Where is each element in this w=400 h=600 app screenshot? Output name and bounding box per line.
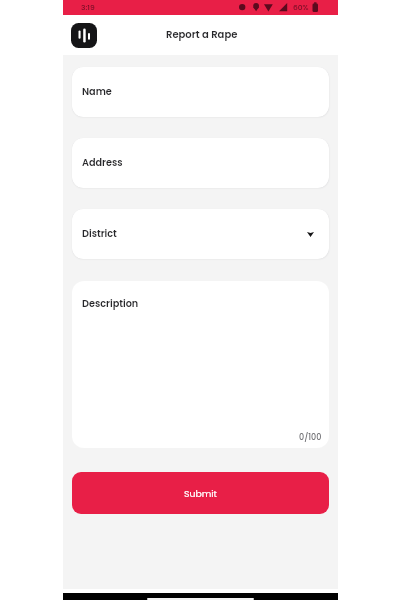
staticText: District (82, 227, 117, 241)
button[interactable]: Submit (72, 472, 329, 514)
button[interactable]: Description (72, 281, 329, 448)
staticText: Submit (184, 487, 217, 500)
staticText: Address (82, 156, 123, 170)
staticText: Name (82, 85, 112, 99)
staticText: 60% (293, 2, 309, 12)
button[interactable]: Address (72, 138, 329, 188)
button[interactable]: Menu (71, 23, 97, 48)
staticText: Description (82, 297, 139, 311)
button[interactable]: Name (72, 67, 329, 117)
staticText: 3:19 (81, 2, 95, 12)
button[interactable]: District (72, 209, 329, 259)
staticText: Report a Rape (166, 27, 238, 41)
staticText: 0/100 (299, 432, 322, 443)
